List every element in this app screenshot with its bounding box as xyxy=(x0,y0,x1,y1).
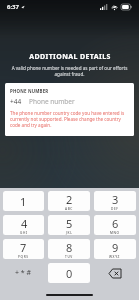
button[interactable]: 0 xyxy=(48,263,90,283)
staticText: ADDITIONAL DETAILS xyxy=(29,52,111,62)
button[interactable]: 5 xyxy=(48,215,90,235)
button[interactable]: + * # xyxy=(3,263,44,283)
staticText: ABC xyxy=(65,207,73,211)
staticText: 1 xyxy=(20,194,27,209)
staticText: 4 xyxy=(21,216,28,231)
button[interactable]: 6 xyxy=(94,215,136,235)
staticText: MNO xyxy=(110,231,120,235)
staticText: +44 xyxy=(10,97,22,106)
staticText: PQRS xyxy=(18,255,29,259)
staticText: A valid phone number is needed as part o… xyxy=(10,65,129,77)
staticText: 3 xyxy=(112,192,119,207)
staticText: 7 xyxy=(20,240,27,255)
button[interactable]: 9 xyxy=(94,239,136,259)
staticText: JKL xyxy=(66,231,73,235)
staticText: 8 xyxy=(66,240,73,255)
staticText: 6 xyxy=(112,216,119,231)
staticText: Phone number xyxy=(29,97,75,106)
staticText: 6:37 xyxy=(7,3,19,11)
staticText: 0 xyxy=(66,266,73,281)
staticText: The phone number country code you have e… xyxy=(10,110,129,128)
button[interactable]: 1 xyxy=(3,191,44,211)
staticText: WXYZ xyxy=(109,255,121,259)
button[interactable]: 7 xyxy=(3,239,44,259)
button[interactable]: 3 xyxy=(94,191,136,211)
staticText: 2 xyxy=(66,192,73,207)
button[interactable]: 8 xyxy=(48,239,90,259)
staticText: PHONE NUMBER xyxy=(10,88,49,94)
button[interactable]: Backspace xyxy=(94,263,136,283)
staticText: GHI xyxy=(20,231,28,235)
staticText: + * # xyxy=(15,268,32,278)
staticText: 5 xyxy=(66,216,73,231)
button[interactable]: PHONE NUMBER xyxy=(5,83,134,136)
staticText: DEF xyxy=(111,207,119,211)
staticText: TUV xyxy=(65,255,73,259)
button[interactable]: 2 xyxy=(48,191,90,211)
button[interactable]: 4 xyxy=(3,215,44,235)
staticText: 9 xyxy=(112,240,119,255)
